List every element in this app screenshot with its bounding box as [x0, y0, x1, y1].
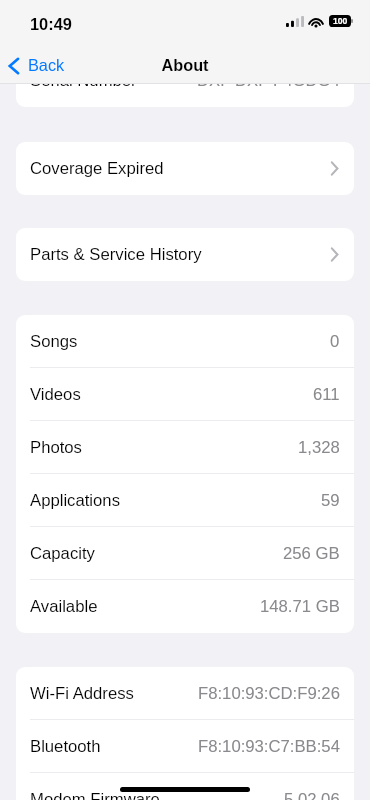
button[interactable]: Capacity [16, 527, 354, 580]
staticText: Capacity [30, 544, 95, 563]
staticText: 611 [313, 385, 340, 404]
button[interactable]: Photos [16, 421, 354, 474]
button[interactable]: Songs [16, 315, 354, 368]
staticText: Serial Number [30, 71, 137, 90]
button[interactable]: Available [16, 580, 354, 633]
staticText: 148.71 GB [260, 597, 340, 616]
button[interactable]: Serial Number [16, 54, 354, 107]
staticText: 100 [333, 16, 348, 26]
button[interactable]: Parts & Service History [16, 228, 354, 281]
button[interactable]: Coverage Expired [16, 142, 354, 195]
staticText: 256 GB [283, 544, 340, 563]
staticText: Coverage Expired [30, 159, 164, 178]
button[interactable]: Applications [16, 474, 354, 527]
button[interactable]: Bluetooth [16, 720, 354, 773]
staticText: 0 [330, 332, 340, 351]
button[interactable]: Videos [16, 368, 354, 421]
staticText: 1,328 [298, 438, 340, 457]
staticText: F8:10:93:CD:F9:26 [198, 684, 340, 703]
button[interactable]: Back [8, 55, 65, 73]
staticText: About [161, 56, 209, 74]
staticText: Wi-Fi Address [30, 684, 134, 703]
staticText: 59 [321, 491, 340, 510]
staticText: Photos [30, 438, 82, 457]
staticText: Videos [30, 385, 81, 404]
staticText: Back [28, 56, 65, 74]
staticText: 10:49 [30, 15, 72, 33]
staticText: Applications [30, 491, 120, 510]
staticText: F8:10:93:C7:BB:54 [198, 737, 340, 756]
staticText: Parts & Service History [30, 245, 202, 264]
staticText: Bluetooth [30, 737, 101, 756]
button[interactable]: Wi-Fi Address [16, 667, 354, 720]
staticText: DXF DXF F4GDG4 [197, 71, 340, 90]
staticText: Modem Firmware [30, 790, 160, 800]
button[interactable]: Modem Firmware [16, 773, 354, 800]
staticText: Available [30, 597, 98, 616]
staticText: Songs [30, 332, 78, 351]
staticText: 5.02.06 [284, 790, 340, 800]
